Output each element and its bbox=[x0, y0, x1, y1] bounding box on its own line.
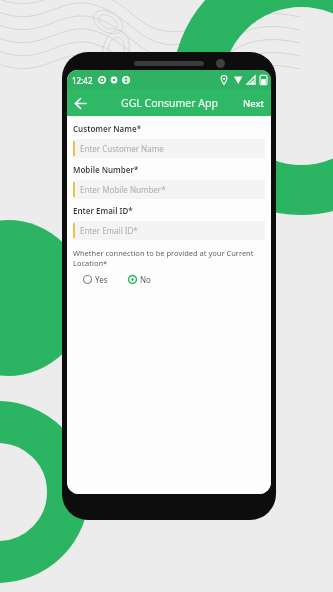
button[interactable]: Enter Mobile Number* bbox=[73, 180, 265, 199]
staticText: Enter Email ID* bbox=[73, 205, 133, 216]
staticText: Enter Customer Name bbox=[80, 143, 164, 154]
button[interactable]: Enter Customer Name bbox=[73, 139, 265, 158]
staticText: Enter Email ID* bbox=[80, 225, 138, 236]
staticText: Next bbox=[243, 97, 264, 110]
staticText: Enter Mobile Number* bbox=[80, 184, 166, 195]
button[interactable]: Back bbox=[67, 90, 93, 116]
button[interactable]: Enter Email ID* bbox=[73, 221, 265, 240]
staticText: GGL Consumer App bbox=[121, 96, 218, 110]
button[interactable]: Next bbox=[236, 92, 271, 115]
staticText: Customer Name* bbox=[73, 123, 141, 134]
button[interactable]: Yes bbox=[81, 272, 110, 287]
staticText: 12:42 bbox=[72, 75, 93, 86]
staticText: Yes bbox=[95, 274, 108, 285]
staticText: Mobile Number* bbox=[73, 164, 139, 175]
staticText: No bbox=[140, 274, 151, 285]
staticText: Whether connection to be provided at you… bbox=[73, 248, 254, 268]
button[interactable]: No bbox=[126, 272, 153, 287]
